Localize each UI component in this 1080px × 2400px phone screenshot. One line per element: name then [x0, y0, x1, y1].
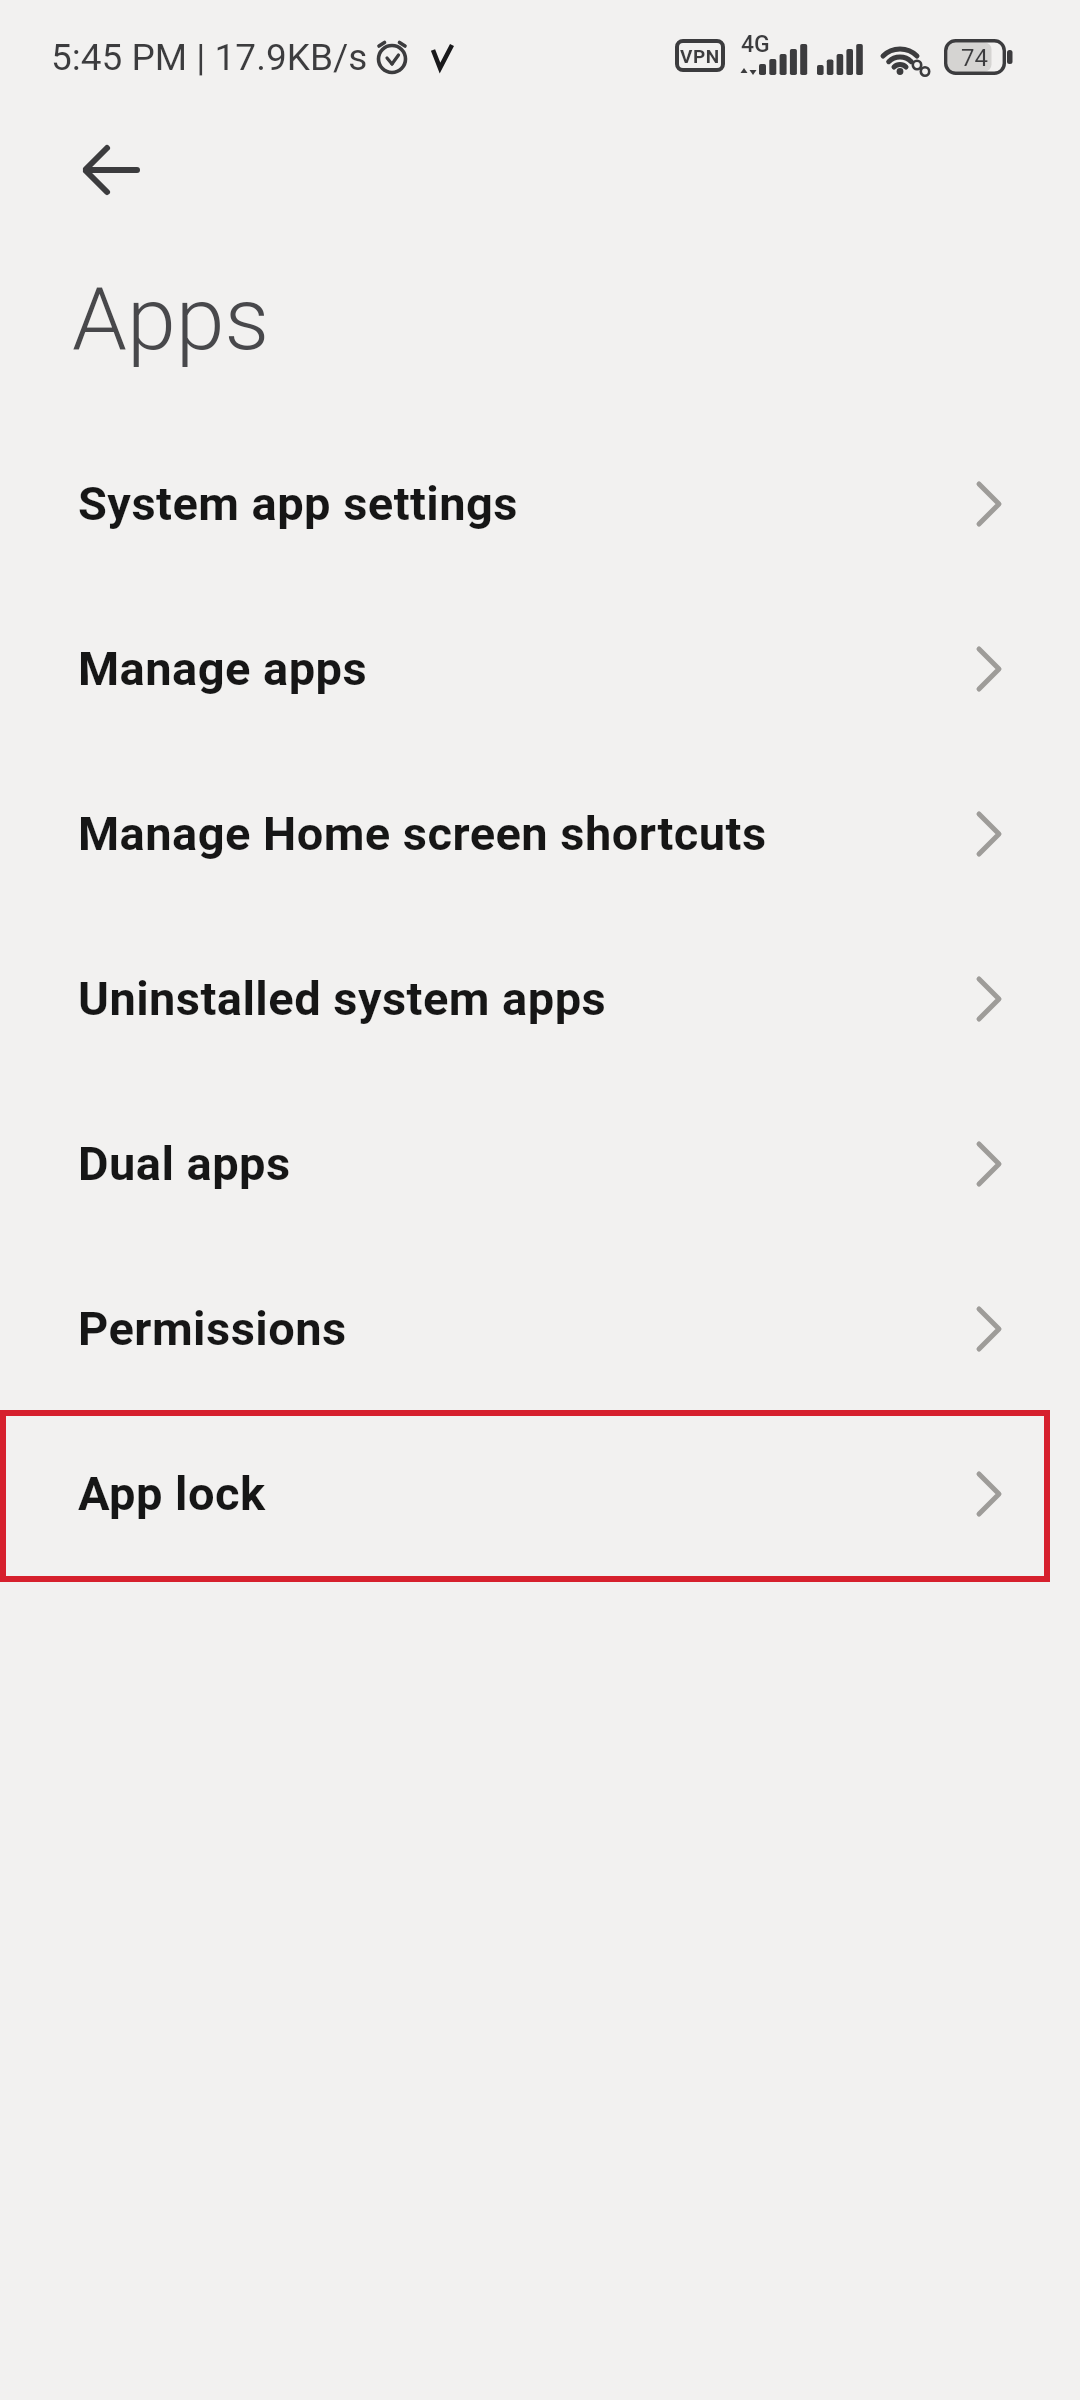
- button[interactable]: Manage apps: [0, 586, 1080, 751]
- button[interactable]: Permissions: [0, 1246, 1080, 1411]
- staticText: Manage apps: [78, 641, 368, 696]
- staticText: Apps: [72, 267, 270, 370]
- button[interactable]: Manage Home screen shortcuts: [0, 751, 1080, 916]
- staticText: Uninstalled system apps: [78, 971, 607, 1026]
- staticText: Manage Home screen shortcuts: [78, 806, 767, 861]
- button[interactable]: [62, 125, 162, 215]
- button[interactable]: App lock: [0, 1411, 1080, 1576]
- staticText: Permissions: [78, 1301, 347, 1356]
- button[interactable]: Dual apps: [0, 1081, 1080, 1246]
- staticText: VPN: [680, 45, 720, 67]
- staticText: App lock: [78, 1466, 266, 1521]
- button[interactable]: System app settings: [0, 421, 1080, 586]
- staticText: 74: [961, 44, 988, 72]
- button[interactable]: Uninstalled system apps: [0, 916, 1080, 1081]
- staticText: System app settings: [78, 476, 518, 531]
- staticText: 4G: [741, 31, 770, 58]
- staticText: Dual apps: [78, 1136, 291, 1191]
- staticText: 5:45 PM | 17.9KB/s: [51, 36, 368, 79]
